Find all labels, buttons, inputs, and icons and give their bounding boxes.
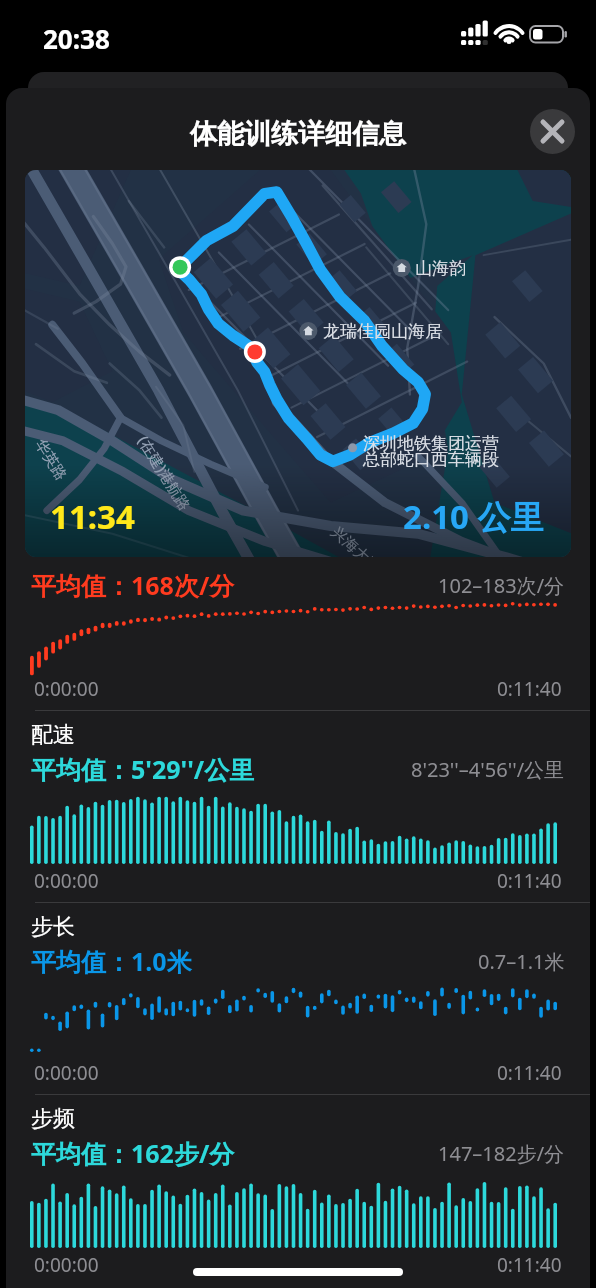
staticText: 11:34 bbox=[50, 494, 135, 539]
staticText: 平均值：5'29''/公里 bbox=[31, 752, 255, 786]
staticText: 147–182步/分 bbox=[438, 1140, 565, 1167]
staticText: 102–183次/分 bbox=[438, 572, 565, 599]
staticText: 0:00:00 bbox=[34, 868, 99, 894]
staticText: 0:00:00 bbox=[34, 1060, 99, 1086]
staticText: 0.7–1.1米 bbox=[478, 948, 565, 975]
staticText: 总部蛇口西车辆段 bbox=[363, 449, 499, 470]
button[interactable]: Close bbox=[530, 109, 575, 154]
staticText: 深圳地铁集团运营 bbox=[363, 433, 499, 454]
staticText: 平均值：1.0米 bbox=[31, 944, 192, 978]
staticText: 20:38 bbox=[43, 21, 110, 56]
staticText: 山海韵 bbox=[415, 258, 466, 279]
staticText: 平均值：168次/分 bbox=[31, 568, 235, 602]
staticText: 2.10 公里 bbox=[403, 494, 544, 539]
staticText: 体能训练详细信息 bbox=[190, 117, 406, 151]
staticText: 0:11:40 bbox=[497, 868, 562, 894]
staticText: 步长 bbox=[31, 913, 75, 941]
staticText: 0:00:00 bbox=[34, 1252, 99, 1278]
staticText: 平均值：162步/分 bbox=[31, 1136, 235, 1170]
staticText: 0:11:40 bbox=[497, 676, 562, 702]
staticText: 步频 bbox=[31, 1105, 75, 1133]
staticText: 0:00:00 bbox=[34, 676, 99, 702]
staticText: 配速 bbox=[31, 721, 75, 749]
staticText: 0:11:40 bbox=[497, 1252, 562, 1278]
staticText: 0:11:40 bbox=[497, 1060, 562, 1086]
staticText: 8'23''–4'56''/公里 bbox=[411, 756, 565, 783]
staticText: 龙瑞佳园山海居 bbox=[323, 321, 442, 342]
